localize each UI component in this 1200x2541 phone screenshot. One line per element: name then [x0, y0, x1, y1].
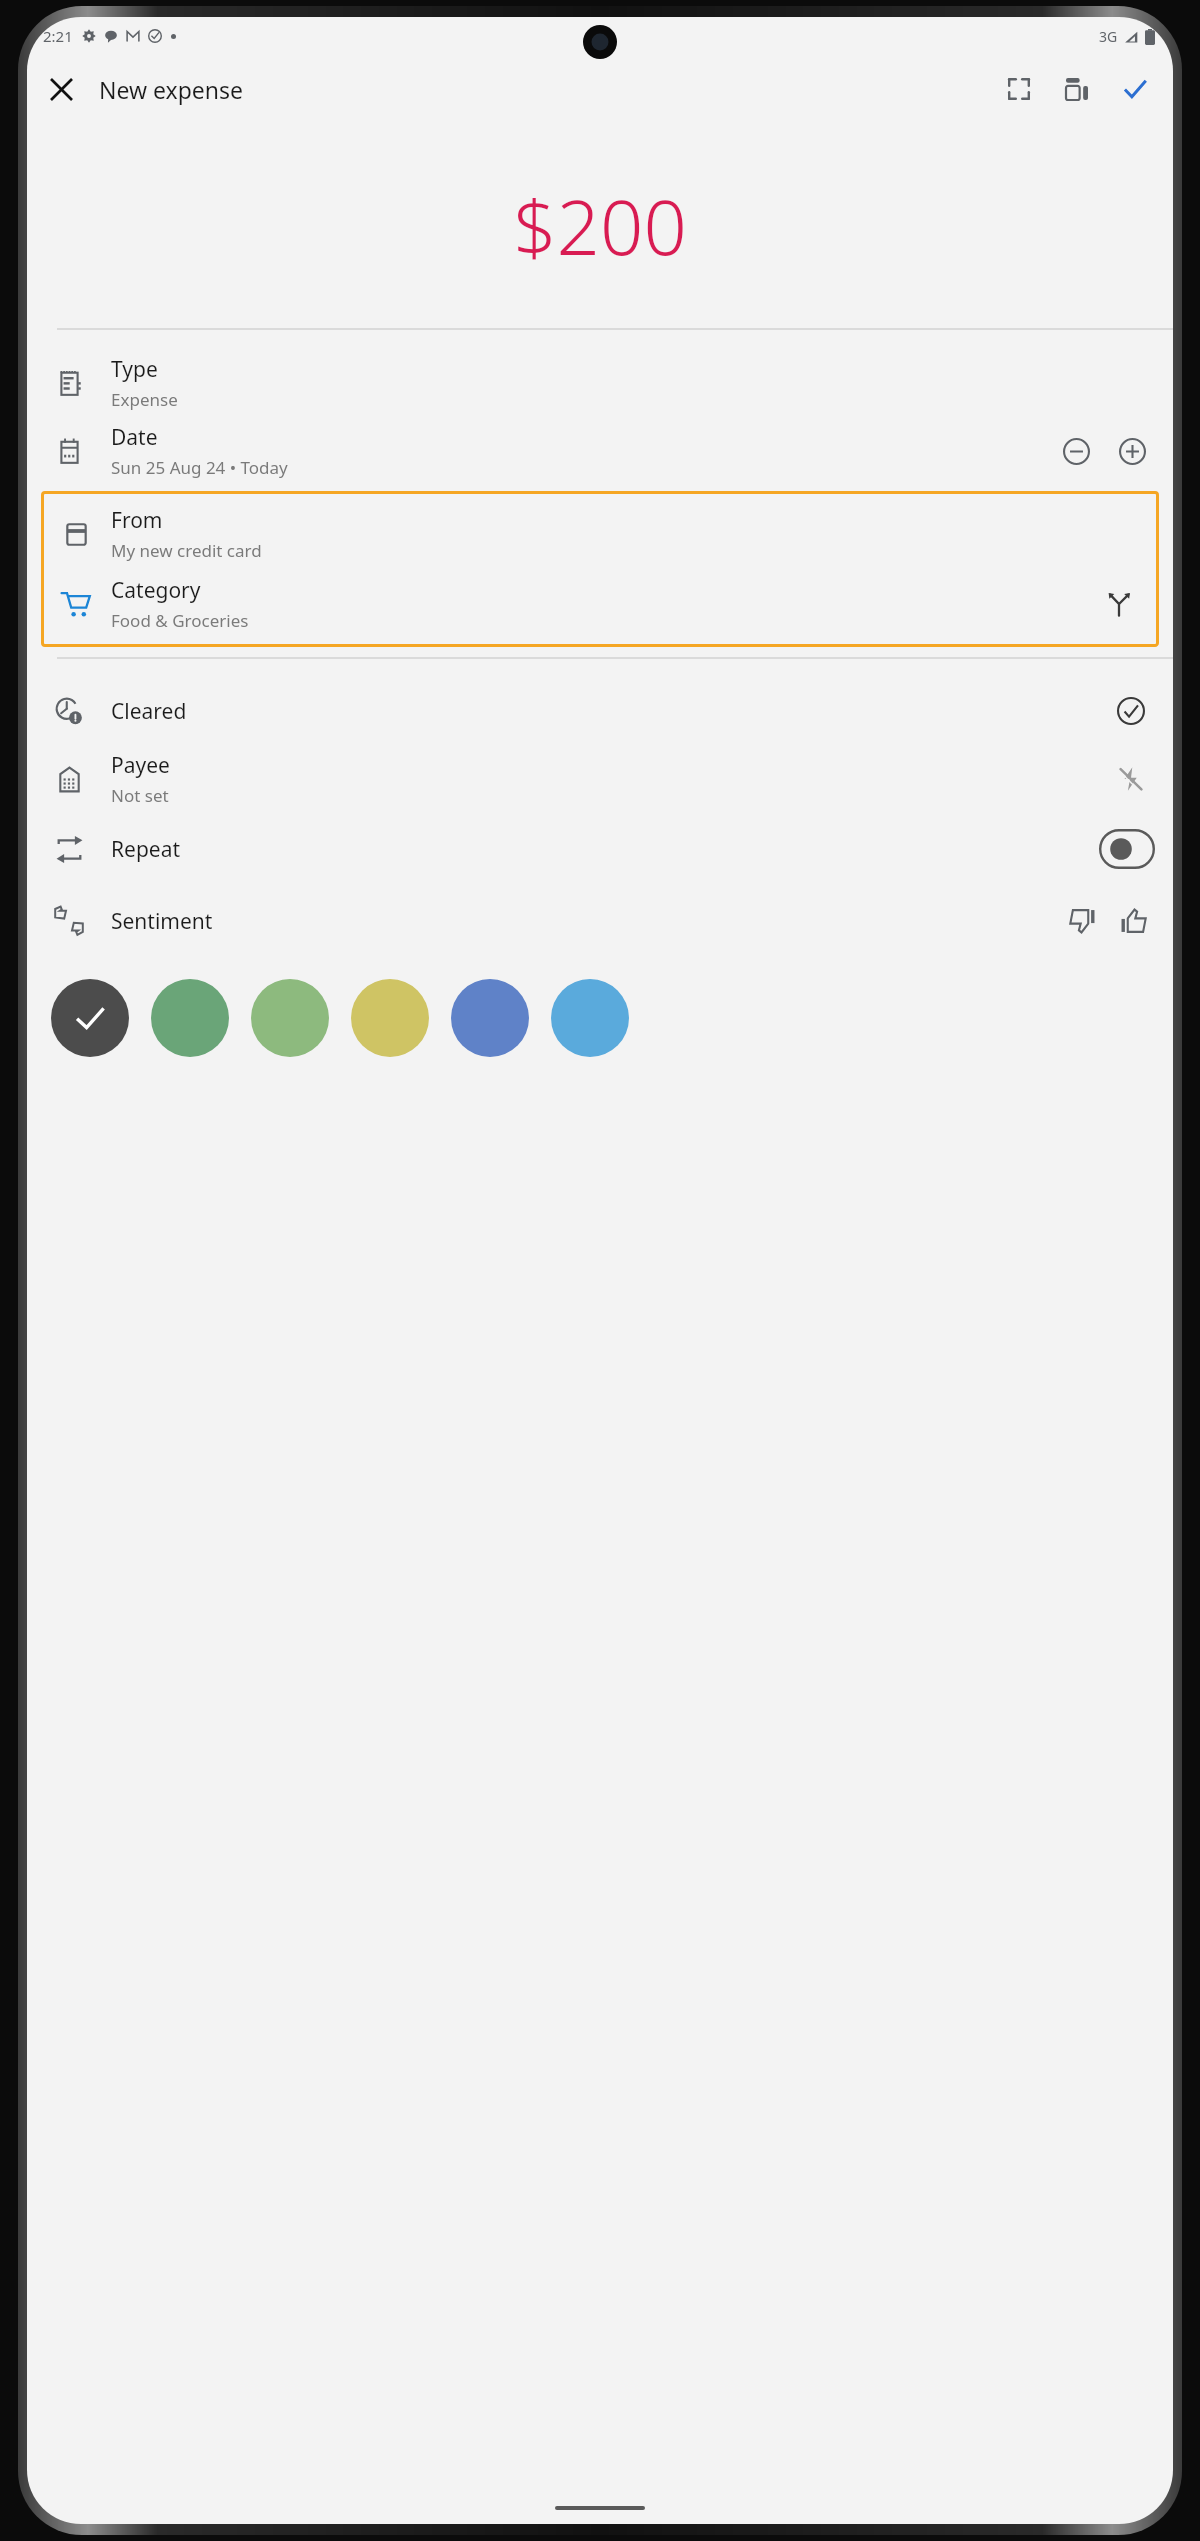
staticText: Type: [111, 355, 158, 384]
staticText: 2:21: [43, 26, 73, 46]
staticText: Category: [111, 576, 201, 605]
button[interactable]: Colour option 4: [351, 979, 429, 1057]
button[interactable]: Colour option 5: [451, 979, 529, 1057]
staticText: Sentiment: [111, 907, 1059, 936]
button[interactable]: Scan receipt: [995, 65, 1043, 113]
button[interactable]: Mark cleared: [1109, 689, 1153, 733]
button[interactable]: Colour option 6: [551, 979, 629, 1057]
staticText: Cleared: [111, 697, 1109, 726]
button[interactable]: Payee: [27, 745, 1173, 813]
staticText: Repeat: [111, 835, 1099, 864]
staticText: Expense: [111, 388, 178, 411]
staticText: Payee: [111, 751, 170, 780]
button[interactable]: Category: [41, 569, 1159, 639]
button[interactable]: Colour option 3: [251, 979, 329, 1057]
staticText: 3G: [1099, 27, 1118, 46]
button[interactable]: Date: [27, 417, 1173, 485]
button[interactable]: $200: [27, 123, 1173, 328]
button[interactable]: Next day: [1109, 428, 1155, 474]
button[interactable]: Previous day: [1053, 428, 1099, 474]
button[interactable]: Layout options: [1053, 65, 1101, 113]
button[interactable]: Type: [27, 349, 1173, 417]
button[interactable]: Save: [1111, 65, 1159, 113]
button[interactable]: Thumbs up: [1111, 898, 1157, 944]
button[interactable]: Sentiment: [27, 885, 1173, 957]
button[interactable]: Repeat toggle: [1099, 829, 1155, 869]
button[interactable]: Repeat: [27, 813, 1173, 885]
button[interactable]: Disable auto payee: [1109, 757, 1153, 801]
button[interactable]: Colour option 1: [51, 979, 129, 1057]
staticText: From: [111, 506, 163, 535]
staticText: Not set: [111, 784, 169, 807]
staticText: Food & Groceries: [111, 609, 249, 632]
staticText: New expense: [99, 74, 244, 105]
staticText: Date: [111, 423, 158, 452]
staticText: $200: [513, 174, 687, 278]
button[interactable]: Cleared: [27, 677, 1173, 745]
button[interactable]: Split transaction: [1099, 584, 1139, 624]
button[interactable]: Colour option 2: [151, 979, 229, 1057]
staticText: Sun 25 Aug 24 • Today: [111, 456, 288, 479]
button[interactable]: From: [41, 499, 1159, 569]
button[interactable]: Thumbs down: [1059, 898, 1105, 944]
staticText: My new credit card: [111, 539, 262, 562]
button[interactable]: Close: [37, 65, 85, 113]
